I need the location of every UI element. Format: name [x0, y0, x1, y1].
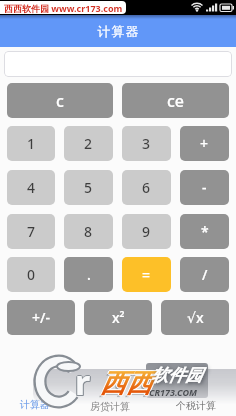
- staticText: 西西: [99, 367, 151, 400]
- button[interactable]: =: [122, 257, 171, 292]
- button[interactable]: 5: [64, 170, 113, 205]
- button[interactable]: 1: [7, 126, 55, 161]
- button[interactable]: 8: [64, 214, 113, 249]
- button[interactable]: 7: [7, 214, 55, 249]
- button[interactable]: x²: [84, 300, 152, 335]
- staticText: 3: [142, 134, 151, 153]
- button[interactable]: 4: [7, 170, 55, 205]
- staticText: -: [202, 178, 207, 197]
- staticText: 计算器: [20, 398, 50, 411]
- button[interactable]: 3: [122, 126, 171, 161]
- staticText: +/-: [32, 308, 50, 327]
- staticText: 1: [27, 134, 36, 153]
- staticText: 2: [84, 134, 93, 153]
- button[interactable]: +: [180, 126, 229, 161]
- staticText: 0: [27, 265, 36, 284]
- staticText: CR173.COM: [149, 386, 197, 398]
- staticText: 房贷计算: [90, 400, 130, 413]
- staticText: /: [202, 265, 208, 284]
- button[interactable]: 2: [64, 126, 113, 161]
- staticText: 西西: [101, 367, 153, 400]
- staticText: 西西: [100, 368, 152, 401]
- button[interactable]: 计算器: [0, 15, 236, 47]
- staticText: +: [200, 134, 209, 153]
- button[interactable]: 6: [122, 170, 171, 205]
- staticText: r: [75, 360, 91, 406]
- button[interactable]: ce: [122, 83, 229, 118]
- staticText: √x: [187, 308, 204, 327]
- staticText: r: [76, 360, 92, 406]
- staticText: 5: [84, 178, 93, 197]
- staticText: r: [76, 359, 92, 405]
- staticText: 软件园: [151, 365, 202, 386]
- staticText: 4: [27, 178, 36, 197]
- button[interactable]: c: [7, 83, 113, 118]
- button[interactable]: [4, 51, 232, 77]
- staticText: 7: [27, 222, 36, 241]
- staticText: .: [87, 265, 91, 284]
- staticText: c: [56, 90, 64, 112]
- button[interactable]: +/-: [7, 300, 75, 335]
- staticText: r: [75, 358, 91, 404]
- staticText: 西西软件园 www.cr173.com: [4, 2, 123, 14]
- staticText: 西西: [100, 366, 152, 399]
- staticText: ce: [167, 90, 185, 112]
- staticText: 9: [142, 222, 151, 241]
- button[interactable]: 9: [122, 214, 171, 249]
- button[interactable]: 0: [7, 257, 55, 292]
- staticText: x²: [112, 308, 125, 327]
- button[interactable]: -: [180, 170, 229, 205]
- staticText: r: [75, 359, 91, 405]
- button[interactable]: .: [64, 257, 113, 292]
- button[interactable]: √x: [161, 300, 229, 335]
- staticText: 西西: [98, 369, 150, 402]
- staticText: r: [74, 360, 90, 406]
- button[interactable]: /: [180, 257, 229, 292]
- button[interactable]: *: [180, 214, 229, 249]
- staticText: =: [142, 265, 151, 284]
- staticText: 6: [142, 178, 151, 197]
- staticText: 计算器: [97, 23, 139, 39]
- staticText: 个税计算: [176, 399, 216, 412]
- staticText: 西西: [100, 367, 152, 400]
- staticText: *: [201, 222, 209, 241]
- staticText: 8: [84, 222, 93, 241]
- staticText: r: [74, 359, 90, 405]
